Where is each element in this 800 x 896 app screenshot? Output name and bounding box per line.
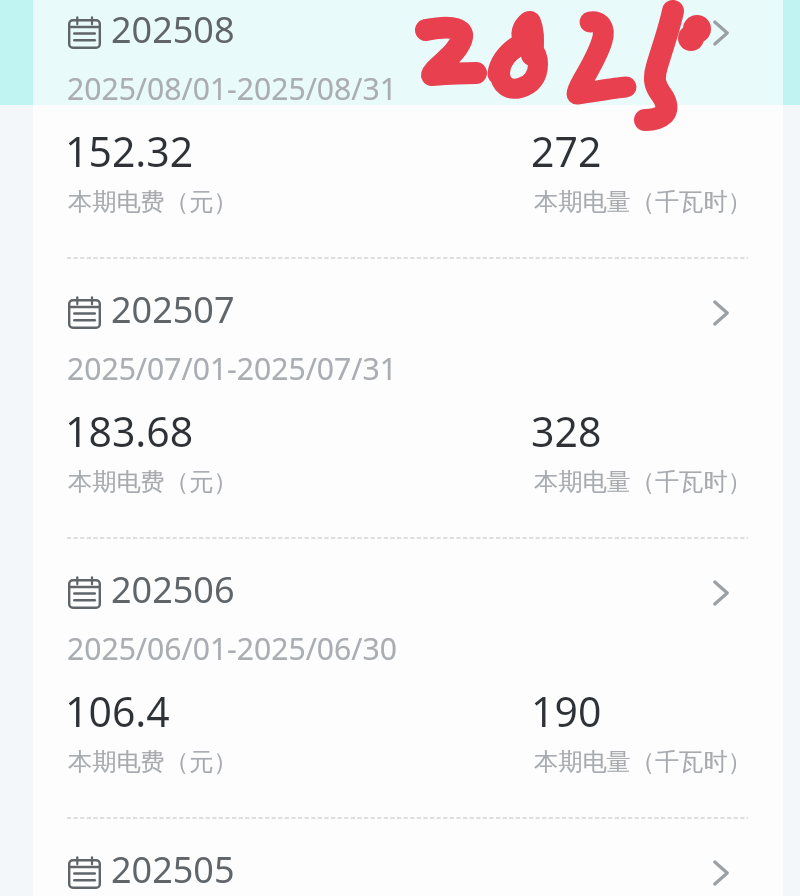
button[interactable]: 202505 xyxy=(0,818,800,896)
staticText: 152.32 xyxy=(65,123,194,179)
other: View bill details xyxy=(707,860,733,886)
staticText: 328 xyxy=(531,403,602,459)
staticText: 本期电费（元） xyxy=(68,187,238,217)
other: 2025 handwritten annotation xyxy=(0,0,800,896)
staticText: 2025/06/01-2025/06/30 xyxy=(67,628,397,669)
staticText: 202507 xyxy=(111,285,235,334)
staticText: 106.4 xyxy=(65,683,170,739)
staticText: 202508 xyxy=(111,5,235,54)
staticText: 2025/08/01-2025/08/31 xyxy=(67,68,397,109)
staticText: 202506 xyxy=(111,565,235,614)
button[interactable]: 202507 xyxy=(0,258,800,537)
button[interactable]: 202506 xyxy=(0,538,800,817)
staticText: 272 xyxy=(531,123,602,179)
other: View bill details xyxy=(707,580,733,606)
other: View bill details xyxy=(707,300,733,326)
staticText: 202505 xyxy=(111,845,235,894)
staticText: 本期电费（元） xyxy=(68,467,238,497)
staticText: 183.68 xyxy=(65,403,194,459)
staticText: 本期电费（元） xyxy=(68,747,238,777)
staticText: 2025/07/01-2025/07/31 xyxy=(67,348,397,389)
staticText: 本期电量（千瓦时） xyxy=(534,467,752,497)
staticText: 本期电量（千瓦时） xyxy=(534,187,752,217)
button[interactable]: 202508 xyxy=(0,0,800,257)
staticText: 190 xyxy=(531,683,602,739)
other: View bill details xyxy=(707,20,733,46)
staticText: 本期电量（千瓦时） xyxy=(534,747,752,777)
